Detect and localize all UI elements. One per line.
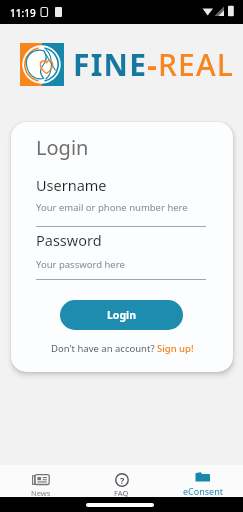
staticText: FINE-REAL	[73, 44, 235, 85]
button[interactable]: ?	[81, 465, 162, 497]
staticText: Password	[36, 230, 102, 250]
staticText: Don't have an account? Sign up!	[51, 342, 194, 355]
button[interactable]: Login	[60, 300, 183, 330]
staticText: eConsent	[183, 485, 223, 497]
button[interactable]: eConsent	[162, 465, 243, 497]
staticText: Login	[36, 134, 89, 161]
staticText: ?	[120, 474, 125, 486]
staticText: Username	[36, 175, 107, 195]
staticText: Your email or phone number here	[36, 201, 188, 214]
button[interactable]: Don't have an account? Sign up!	[11, 342, 233, 355]
staticText: 11:19	[10, 6, 36, 20]
staticText: FAQ	[114, 488, 129, 497]
staticText: Your password here	[36, 258, 125, 271]
button[interactable]: News	[0, 465, 81, 497]
staticText: Login	[107, 308, 137, 322]
staticText: News	[31, 488, 51, 497]
